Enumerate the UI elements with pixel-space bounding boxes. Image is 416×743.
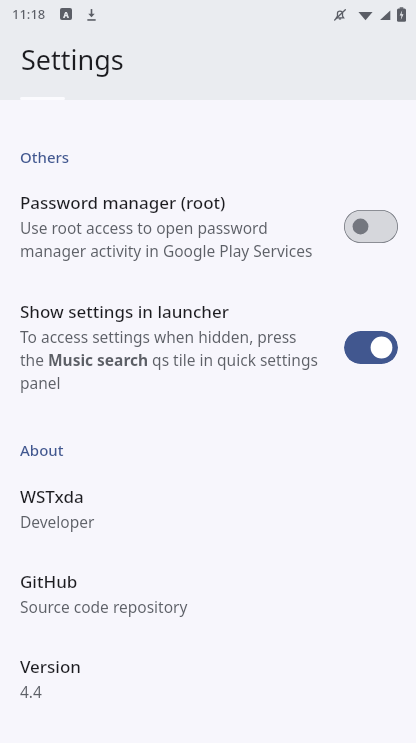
button[interactable]: Toggle on [344, 331, 398, 364]
button[interactable]: GitHub [0, 532, 416, 617]
staticText: About [20, 440, 64, 460]
staticText: WSTxda [20, 485, 84, 508]
staticText: Settings [21, 41, 124, 78]
staticText: A [63, 9, 69, 20]
staticText: Password manager (root) [20, 191, 226, 214]
button[interactable]: WSTxda [0, 460, 416, 532]
staticText: To access settings when hidden, press th… [20, 326, 322, 394]
staticText: GitHub [20, 570, 78, 593]
button[interactable]: Password manager (root) [0, 167, 416, 262]
staticText: 11:18 [12, 5, 46, 23]
staticText: Source code repository [20, 596, 188, 617]
staticText: Show settings in launcher [20, 300, 229, 323]
staticText: Others [20, 147, 70, 167]
staticText: Version [20, 655, 81, 678]
staticText: Use root access to open password manager… [20, 217, 322, 262]
button[interactable]: Version [0, 617, 416, 702]
button[interactable]: Show settings in launcher [0, 262, 416, 394]
button[interactable]: Toggle off [344, 210, 398, 243]
staticText: 4.4 [20, 681, 42, 702]
staticText: Developer [20, 511, 95, 532]
